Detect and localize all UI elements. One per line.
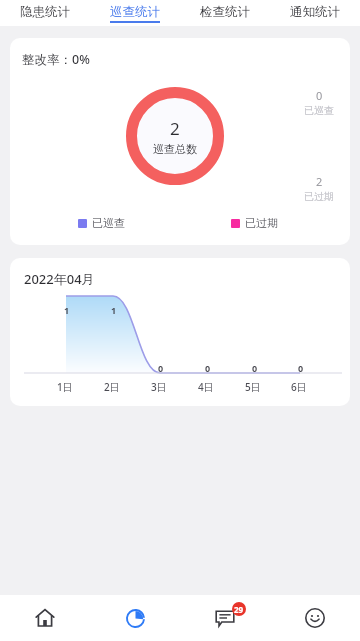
staticText: 2 (316, 174, 323, 189)
staticText: 0 (316, 88, 323, 103)
staticText: 巡查统计 (110, 4, 160, 20)
button[interactable]: 巡查统计 (90, 0, 180, 26)
staticText: 3日 (151, 380, 167, 394)
button[interactable]: 隐患统计 (0, 0, 90, 26)
staticText: 1日 (57, 380, 73, 394)
button[interactable]: 已巡查 (78, 216, 125, 230)
staticText: 已巡查 (92, 216, 125, 230)
staticText: 检查统计 (200, 4, 250, 20)
staticText: 整改率：0% (22, 51, 90, 68)
staticText: 2 (170, 117, 180, 140)
staticText: 0 (298, 362, 304, 374)
button[interactable]: Home (0, 595, 90, 641)
staticText: 已过期 (304, 190, 334, 203)
staticText: 1 (111, 304, 117, 316)
button[interactable]: Profile (270, 595, 360, 641)
staticText: 已过期 (245, 216, 278, 230)
button[interactable]: 检查统计 (180, 0, 270, 26)
staticText: 巡查总数 (153, 142, 197, 156)
button[interactable]: Messages (180, 595, 270, 641)
staticText: 0 (205, 362, 211, 374)
staticText: 通知统计 (290, 4, 340, 20)
staticText: 隐患统计 (20, 4, 70, 20)
staticText: 5日 (245, 380, 261, 394)
staticText: 6日 (291, 380, 307, 394)
staticText: 已巡查 (304, 104, 334, 117)
button[interactable]: 通知统计 (270, 0, 360, 26)
staticText: 2022年04月 (24, 270, 95, 288)
button[interactable]: 已过期 (231, 216, 278, 230)
staticText: 29 (234, 604, 244, 615)
staticText: 4日 (198, 380, 214, 394)
staticText: 0 (252, 362, 258, 374)
button[interactable]: Statistics (90, 595, 180, 641)
staticText: 0 (158, 362, 164, 374)
staticText: 1 (64, 304, 70, 316)
staticText: 2日 (104, 380, 120, 394)
